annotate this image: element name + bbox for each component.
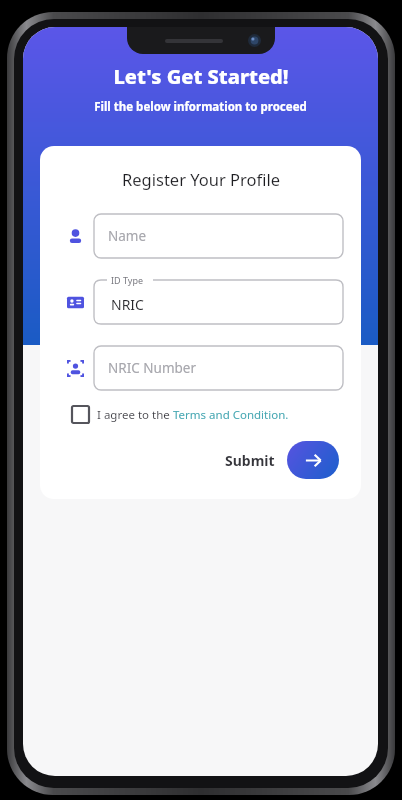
staticText: Register Your Profile xyxy=(122,168,280,190)
button[interactable]: Name xyxy=(94,214,343,258)
staticText: NRIC Number xyxy=(108,359,196,377)
staticText: Submit xyxy=(225,451,275,470)
staticText: I agree to the xyxy=(97,407,173,423)
other: Submit xyxy=(287,441,339,479)
staticText: Name xyxy=(108,227,147,245)
button[interactable]: ID Type xyxy=(94,280,343,324)
staticText: Fill the below information to proceed xyxy=(94,99,307,115)
button[interactable]: I agree to the xyxy=(72,406,343,423)
staticText: NRIC xyxy=(111,295,144,314)
staticText: Let's Get Started! xyxy=(113,63,289,90)
button[interactable]: Submit xyxy=(225,441,339,479)
staticText: ID Type xyxy=(111,274,143,286)
button[interactable]: NRIC Number xyxy=(94,346,343,390)
staticText: Terms and Condition. xyxy=(173,407,289,423)
